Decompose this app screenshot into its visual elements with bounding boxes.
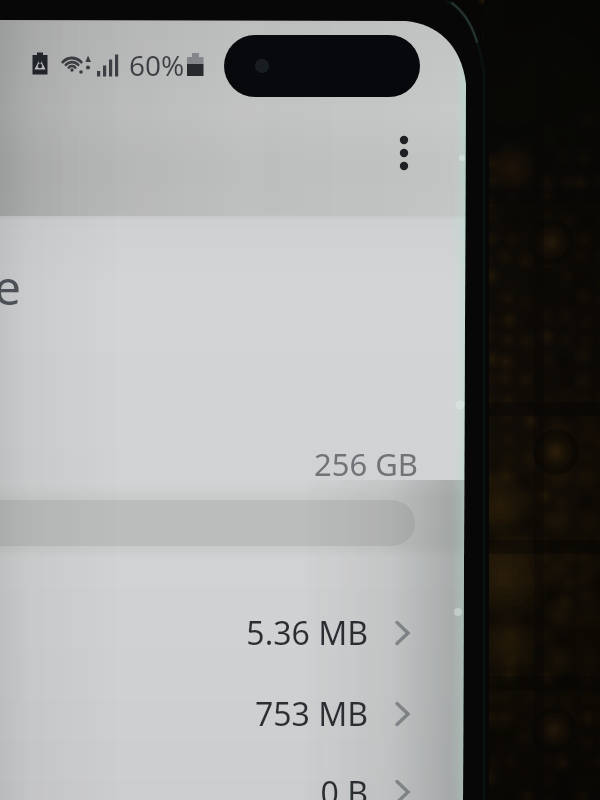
staticText: e [0, 254, 22, 319]
staticText: 5.36 MB [0, 611, 368, 657]
button[interactable]: e [0, 250, 240, 320]
staticText: 0 B [0, 771, 368, 800]
button[interactable]: 753 MB [0, 670, 460, 744]
button[interactable]: 60% [20, 44, 210, 84]
button[interactable]: More options [382, 120, 428, 184]
staticText: 60% [129, 46, 185, 84]
button[interactable]: 0 B [0, 749, 460, 800]
staticText: 753 MB [0, 692, 368, 738]
staticText: 256 GB [314, 443, 424, 483]
button[interactable]: 5.36 MB [0, 589, 460, 663]
